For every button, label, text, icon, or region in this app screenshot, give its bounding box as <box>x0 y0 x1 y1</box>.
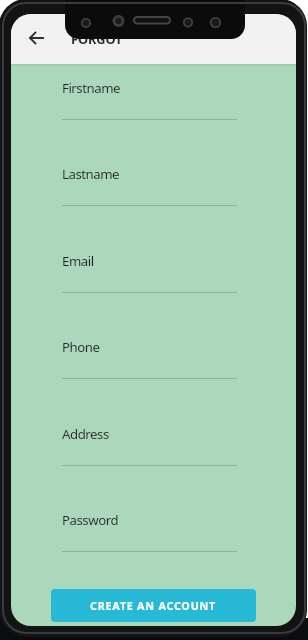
button[interactable]: CREATE AN ACCOUNT <box>51 589 256 622</box>
staticText: Password <box>62 511 119 529</box>
staticText: Lastname <box>62 165 120 183</box>
staticText: CREATE AN ACCOUNT <box>90 598 217 613</box>
staticText: Phone <box>62 338 100 356</box>
staticText: FORGOT <box>71 30 123 47</box>
staticText: Firstname <box>62 79 121 97</box>
button[interactable]: Firstname <box>62 77 248 129</box>
staticText: Email <box>62 252 94 270</box>
button[interactable]: Address <box>62 423 248 475</box>
staticText: Address <box>62 425 109 443</box>
button[interactable] <box>22 27 50 49</box>
button[interactable]: Phone <box>62 336 248 388</box>
button[interactable]: Email <box>62 250 248 302</box>
button[interactable]: Password <box>62 509 248 561</box>
button[interactable]: Lastname <box>62 163 248 215</box>
